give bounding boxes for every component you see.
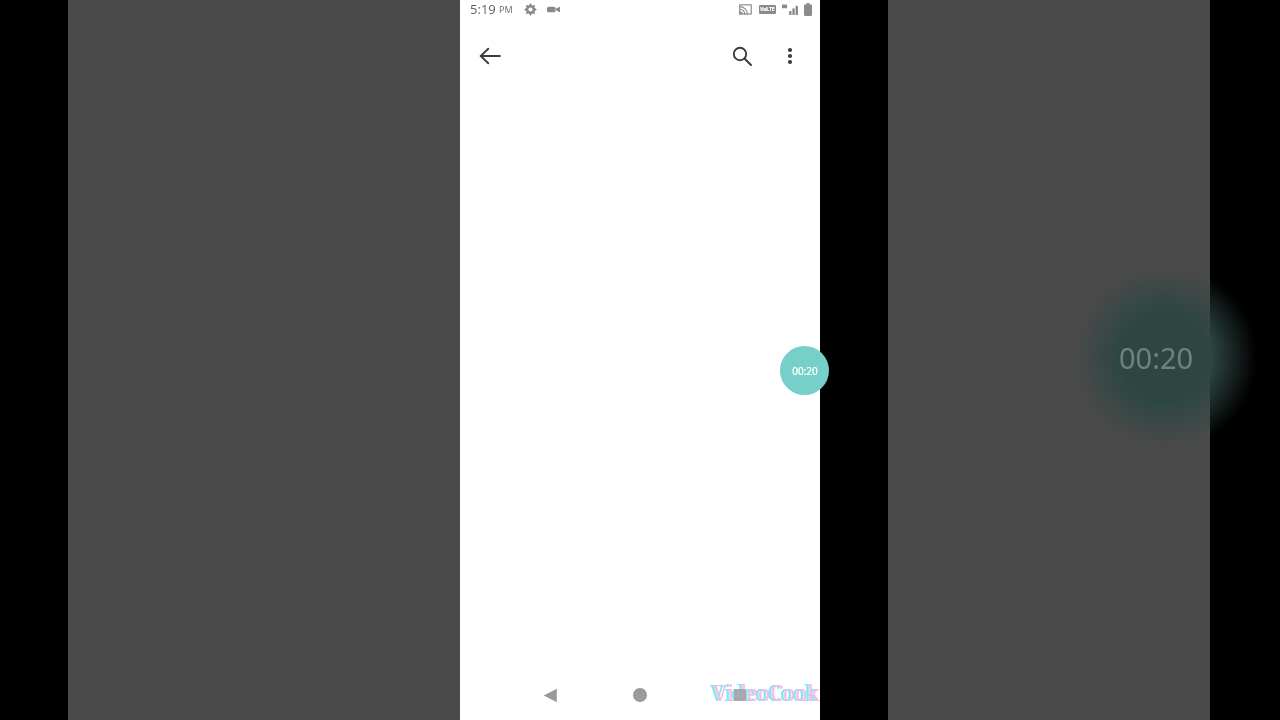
staticText: 00:20 [792,364,818,378]
staticText: 00:20 [1119,338,1194,377]
button[interactable]: More options [766,32,814,80]
button[interactable]: Home [616,671,664,719]
staticText: VideoCook [713,679,820,708]
button[interactable]: Navigate up [466,32,514,80]
staticText: 5:19 [470,0,496,18]
button[interactable]: Recent apps [716,671,764,719]
button[interactable]: Search [718,32,766,80]
button[interactable]: Back [526,671,574,719]
button[interactable]: 00:20 [780,346,829,395]
staticText: PM [499,3,513,15]
staticText: VoLTE [760,6,775,13]
staticText: VideoCook [710,679,817,708]
